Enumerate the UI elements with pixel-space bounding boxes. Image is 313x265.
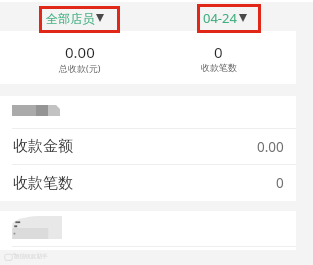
staticText: 收款金额 [13,137,73,156]
staticText: 收款笔数 [201,62,237,73]
staticText: 收款笔数 [13,174,73,193]
staticText: 总收款(元) [59,62,101,74]
staticText: 0 [276,174,284,192]
staticText: 04-24 [203,9,237,27]
staticText: 0.00 [65,42,95,62]
button[interactable]: 收款金额 [0,129,296,164]
button[interactable]: 收款笔数 [0,165,296,201]
staticText: 0.00 [257,138,284,156]
staticText: 全部店员 [46,11,95,26]
staticText: 微信收款助手 [14,253,48,260]
button[interactable]: 04-24 [200,7,251,31]
button[interactable]: 0.00 [11,31,149,84]
button[interactable]: 全部店员 [43,7,108,31]
button[interactable]: 0 [149,31,288,84]
staticText: 0 [214,42,223,62]
